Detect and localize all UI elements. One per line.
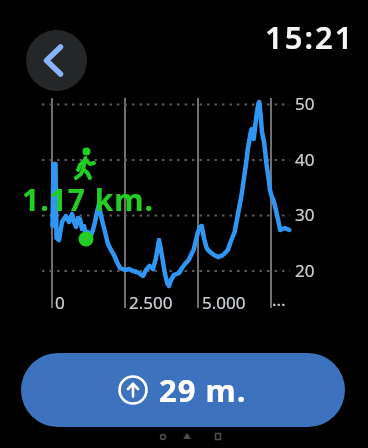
button[interactable] — [26, 30, 87, 91]
staticText: 15:21 — [265, 16, 355, 58]
staticText: 2.500 — [129, 291, 173, 314]
staticText: 50 — [295, 92, 315, 115]
staticText: 5.000 — [202, 291, 246, 314]
staticText: 29 m. — [159, 369, 247, 411]
staticText: ... — [272, 288, 286, 311]
staticText: 40 — [295, 148, 315, 171]
staticText: 20 — [295, 259, 315, 282]
button[interactable]: 29 m. — [21, 353, 345, 427]
staticText: 1.17 km. — [22, 179, 154, 220]
staticText: 30 — [295, 203, 315, 226]
staticText: 0 — [55, 291, 65, 314]
